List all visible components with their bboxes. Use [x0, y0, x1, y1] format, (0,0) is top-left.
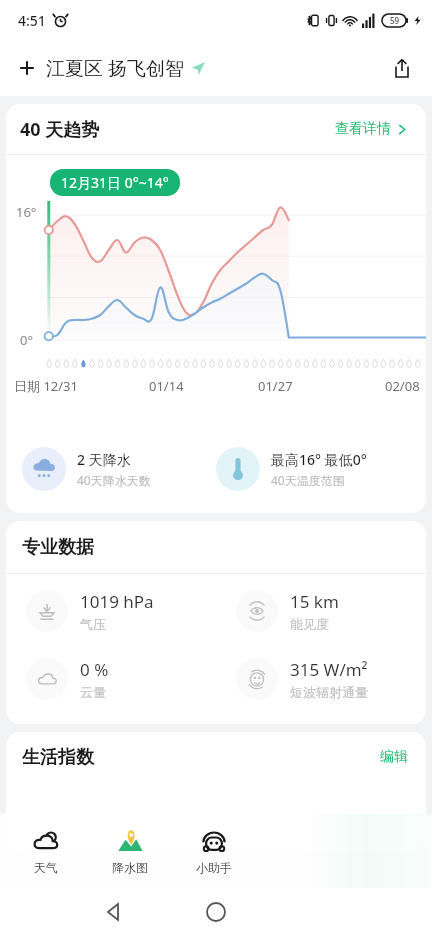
staticText: 40天温度范围 — [271, 472, 345, 488]
staticText: 59 — [390, 15, 400, 26]
button[interactable]: 2 天降水 — [22, 447, 216, 491]
staticText: 气压 — [80, 616, 106, 632]
staticText: 生活指数 — [22, 746, 94, 769]
staticText: 降水图 — [112, 860, 148, 875]
staticText: 能见度 — [290, 616, 329, 632]
staticText: 最高16° 最低0° — [271, 450, 367, 469]
button[interactable]: 天气 — [4, 814, 88, 888]
button[interactable]: 15 km — [216, 590, 426, 632]
staticText: 日期 12/31 — [14, 377, 78, 395]
button[interactable]: 1019 hPa — [6, 590, 216, 632]
staticText: 小助手 — [196, 860, 232, 875]
other: Home — [206, 902, 226, 922]
staticText: 云量 — [80, 684, 106, 700]
button[interactable]: 315 W/m² — [216, 658, 426, 700]
staticText: 40天降水天数 — [77, 472, 151, 488]
staticText: 专业数据 — [22, 536, 94, 559]
button[interactable]: Add city — [14, 51, 209, 85]
staticText: 天气 — [34, 860, 58, 875]
staticText: 4:51 — [18, 11, 46, 30]
staticText: 短波辐射通量 — [290, 684, 368, 700]
staticText: 15 km — [290, 590, 339, 613]
staticText: 01/14 — [149, 377, 184, 395]
button[interactable]: 小助手 — [172, 814, 256, 888]
staticText: 江夏区 扬飞创智 — [46, 55, 184, 81]
button[interactable]: 编辑 — [376, 744, 412, 770]
other: Back — [104, 902, 124, 922]
staticText: 315 W/m² — [290, 658, 368, 681]
staticText: 12月31日 0°~14° — [61, 173, 169, 192]
staticText: 40 天趋势 — [20, 117, 100, 142]
staticText: 02/08 — [385, 377, 420, 395]
staticText: 1019 hPa — [80, 590, 154, 613]
button[interactable]: 查看详情 — [331, 116, 412, 142]
staticText: 01/27 — [258, 377, 293, 395]
button[interactable]: 降水图 — [88, 814, 172, 888]
staticText: 16° — [16, 203, 37, 221]
staticText: 2 天降水 — [77, 450, 131, 469]
staticText: 编辑 — [380, 748, 408, 766]
button[interactable]: Share — [386, 52, 418, 84]
staticText: 0 % — [80, 658, 109, 681]
button[interactable]: 最高16° 最低0° — [216, 447, 410, 491]
staticText: 0° — [20, 331, 34, 349]
staticText: 查看详情 — [335, 120, 391, 138]
button[interactable]: 0 % — [6, 658, 216, 700]
other: Add city — [18, 59, 36, 77]
